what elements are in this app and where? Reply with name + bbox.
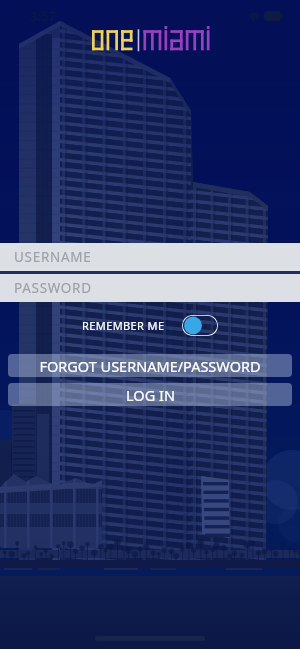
staticText: LOG IN — [126, 385, 175, 405]
staticText: PASSWORD — [14, 279, 92, 297]
button[interactable]: USERNAME — [0, 243, 300, 271]
staticText: REMEMBER ME — [82, 318, 165, 333]
button[interactable]: PASSWORD — [0, 274, 300, 302]
staticText: FORGOT USERNAME/PASSWORD — [39, 356, 261, 376]
button[interactable]: FORGOT USERNAME/PASSWORD — [8, 354, 292, 377]
staticText: USERNAME — [14, 248, 92, 266]
staticText: 3:57 — [30, 7, 56, 25]
button[interactable]: Remember me toggle — [182, 315, 218, 336]
button[interactable]: LOG IN — [8, 383, 292, 406]
